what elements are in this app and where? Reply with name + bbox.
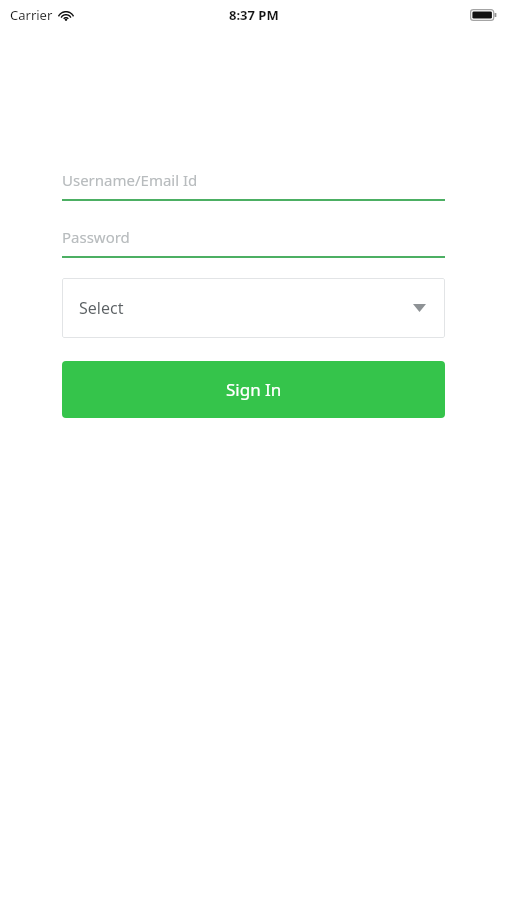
staticText: Password [62, 227, 130, 247]
staticText: Select [79, 297, 413, 319]
staticText: Sign In [226, 378, 282, 401]
staticText: Username/Email Id [62, 170, 198, 190]
staticText: 8:37 PM [229, 6, 279, 24]
button[interactable]: Password [62, 217, 445, 258]
staticText: Carrier [10, 6, 53, 24]
button[interactable]: Sign In [62, 361, 445, 418]
button[interactable]: Select [62, 278, 445, 338]
button[interactable]: Username/Email Id [62, 160, 445, 201]
